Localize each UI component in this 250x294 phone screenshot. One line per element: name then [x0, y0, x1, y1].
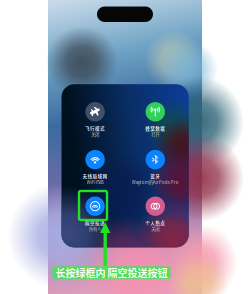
staticText: 关闭 [91, 131, 99, 137]
button[interactable]: 无线局域网 [64, 150, 126, 198]
staticText: Waytom的AirPods Pro [132, 179, 179, 185]
button[interactable]: 飞行模式 [64, 102, 126, 150]
staticText: 飞行模式 [85, 125, 105, 132]
staticText: 蓝牙 [150, 173, 160, 179]
staticText: 打开 [151, 131, 159, 137]
button[interactable]: 个人热点 [124, 196, 186, 244]
button[interactable]: 蓝牙 [124, 150, 186, 198]
staticText: 无线局域网 [83, 173, 108, 179]
staticText: 长按绿框内 隔空投送按钮 [55, 265, 167, 280]
staticText: WiFi-Y585 [87, 179, 104, 185]
staticText: 蜂窝数据 [145, 125, 165, 132]
staticText: 隔空投送 [85, 219, 105, 226]
button[interactable]: 隔空投送 [64, 196, 126, 244]
staticText: 所有人 [89, 225, 101, 232]
staticText: 个人热点 [145, 219, 165, 226]
staticText: 关闭 [151, 225, 159, 232]
button[interactable]: 蜂窝数据 [124, 102, 186, 150]
